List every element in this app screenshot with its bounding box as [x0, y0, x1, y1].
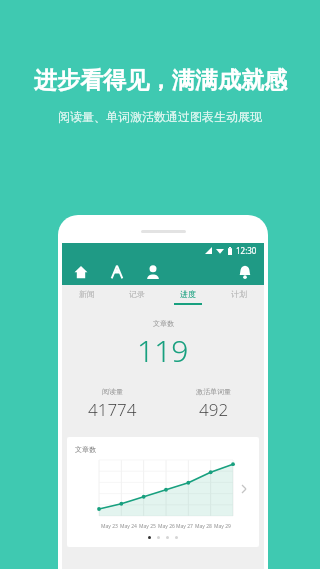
staticText: 12:30	[236, 245, 257, 256]
staticText: 进步看得见，满满成就感	[34, 66, 287, 95]
staticText: 进度	[180, 289, 196, 299]
button[interactable]	[175, 536, 178, 539]
staticText: May 24	[120, 523, 137, 530]
staticText: May 23	[101, 523, 118, 530]
button[interactable]: Next chart	[237, 482, 251, 496]
staticText: 阅读量、单词激活数通过图表生动展现	[58, 109, 262, 124]
button[interactable]: 阅读量	[62, 385, 163, 423]
staticText: May 27	[176, 523, 193, 530]
button[interactable]: Profile	[143, 262, 163, 282]
button[interactable]: 计划	[213, 285, 264, 309]
staticText: 记录	[129, 289, 145, 299]
button[interactable]: Home	[71, 262, 91, 282]
staticText: 41774	[88, 398, 137, 421]
staticText: 激活单词量	[196, 387, 231, 396]
staticText: May 29	[214, 523, 231, 530]
button[interactable]: 进度	[162, 285, 213, 309]
button[interactable]: 激活单词量	[163, 385, 264, 423]
staticText: 文章数	[153, 319, 174, 328]
staticText: 文章数	[75, 445, 96, 454]
staticText: 计划	[231, 289, 247, 299]
button[interactable]	[157, 536, 160, 539]
button[interactable]: 记录	[112, 285, 162, 309]
button[interactable]: 文章数	[67, 437, 259, 547]
button[interactable]	[148, 536, 151, 539]
staticText: 492	[199, 398, 229, 421]
button[interactable]: Notifications	[235, 262, 255, 282]
staticText: May 26	[158, 523, 175, 530]
button[interactable]: 新闻	[62, 285, 112, 309]
staticText: May 28	[195, 523, 212, 530]
staticText: 119	[137, 330, 189, 371]
staticText: May 25	[139, 523, 156, 530]
button[interactable]: Discover	[107, 262, 127, 282]
button[interactable]	[166, 536, 169, 539]
staticText: 新闻	[79, 289, 95, 299]
staticText: 阅读量	[102, 387, 123, 396]
